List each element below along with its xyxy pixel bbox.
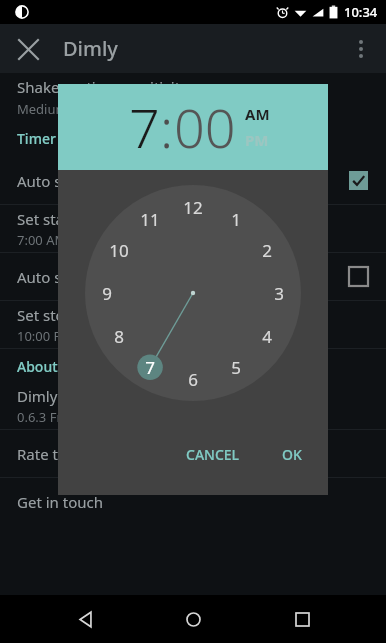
button[interactable]: 7: [129, 90, 160, 164]
button[interactable]: 8: [114, 325, 124, 348]
staticText: Dimly: [17, 386, 58, 406]
button[interactable]: More options: [340, 28, 382, 70]
button[interactable]: Recent apps: [278, 595, 326, 643]
staticText: 10:34: [344, 3, 378, 21]
staticText: 7:00 AM: [17, 231, 67, 249]
button[interactable]: PM: [245, 130, 269, 150]
button[interactable]: Set start time: [0, 205, 386, 252]
staticText: 10:00 PM: [17, 327, 74, 345]
staticText: Shake motion sensitivity: [17, 77, 188, 97]
button[interactable]: Home: [169, 595, 217, 643]
staticText: Medium: [17, 100, 68, 118]
button[interactable]: 12: [183, 196, 203, 219]
staticText: :: [160, 90, 174, 164]
staticText: 0.6.3 Free: [17, 408, 77, 426]
button[interactable]: 5: [231, 356, 241, 379]
staticText: Set stop time: [17, 305, 110, 325]
button[interactable]: 1: [231, 208, 241, 231]
button[interactable]: Auto start timer: [0, 157, 386, 204]
button[interactable]: 4: [262, 325, 272, 348]
button[interactable]: 2: [262, 239, 272, 262]
button[interactable]: Dimly: [0, 383, 386, 429]
button[interactable]: AM: [245, 104, 270, 124]
staticText: CANCEL: [186, 445, 240, 464]
button[interactable]: Set stop time: [0, 301, 386, 348]
button[interactable]: Auto stop timer: [0, 253, 386, 300]
button[interactable]: OK: [272, 438, 312, 471]
button[interactable]: Back: [61, 595, 109, 643]
staticText: Get in touch: [17, 492, 103, 512]
staticText: OK: [282, 445, 302, 464]
button[interactable]: Rate this app: [0, 430, 386, 477]
button[interactable]: 3: [274, 282, 284, 305]
staticText: Dimly: [63, 35, 118, 62]
button[interactable]: Shake motion sensitivity: [0, 75, 386, 119]
button[interactable]: CANCEL: [176, 438, 250, 471]
staticText: About: [17, 357, 58, 376]
button[interactable]: 6: [188, 368, 198, 391]
button[interactable]: 9: [102, 282, 112, 305]
staticText: Rate this app: [17, 444, 110, 464]
staticText: Auto start timer: [17, 171, 129, 191]
button[interactable]: 10: [109, 239, 129, 262]
staticText: Set start time: [17, 209, 112, 229]
button[interactable]: 7: [145, 356, 155, 379]
button[interactable]: Get in touch: [0, 478, 386, 525]
staticText: Auto stop timer: [17, 267, 128, 287]
button[interactable]: 11: [140, 208, 160, 231]
staticText: Timer: [17, 129, 56, 148]
button[interactable]: 00: [174, 90, 236, 164]
button[interactable]: Close: [8, 29, 48, 69]
